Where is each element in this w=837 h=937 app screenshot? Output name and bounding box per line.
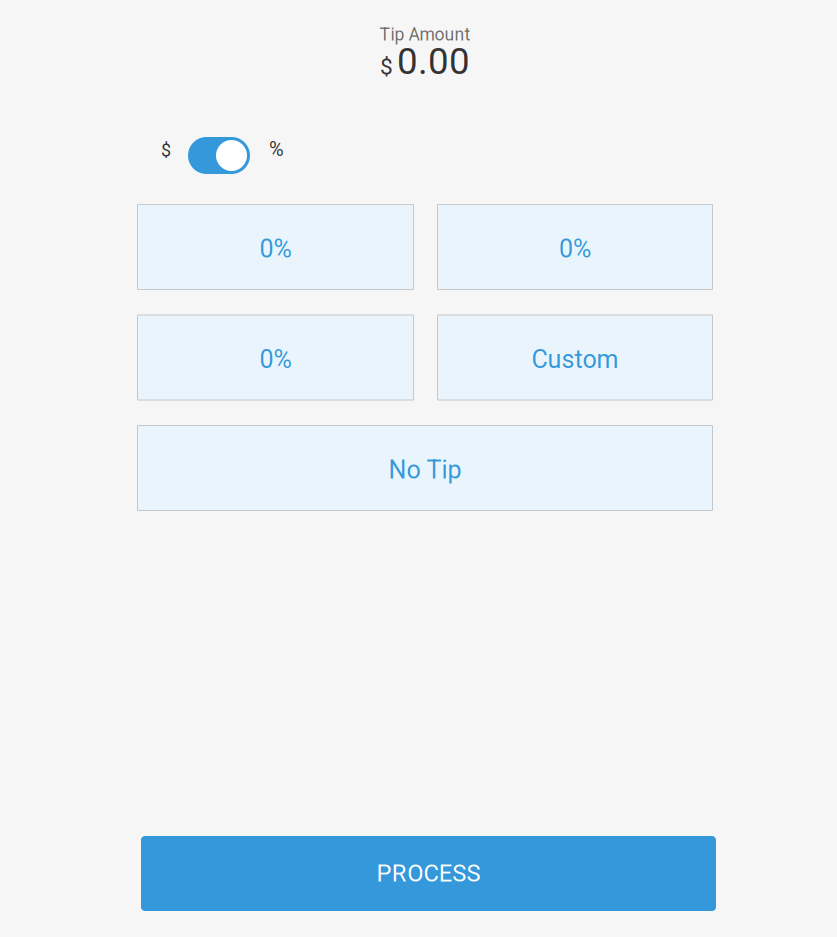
staticText: $ xyxy=(161,140,171,161)
staticText: No Tip xyxy=(388,455,461,485)
button[interactable]: PROCESS xyxy=(141,836,716,911)
button[interactable]: No Tip xyxy=(137,425,713,511)
button[interactable]: 0% xyxy=(437,204,713,290)
staticText: 0.00 xyxy=(397,40,470,83)
staticText: % xyxy=(269,138,284,161)
staticText: 0% xyxy=(559,234,591,264)
button[interactable]: Custom xyxy=(437,314,713,400)
staticText: 0% xyxy=(259,345,291,374)
staticText: Tip Amount xyxy=(379,24,470,45)
staticText: 0% xyxy=(259,234,291,264)
button[interactable]: 0% xyxy=(137,204,414,290)
button[interactable]: 0% xyxy=(137,314,414,400)
button[interactable]: Switch between amount and percent xyxy=(188,137,250,174)
staticText: PROCESS xyxy=(376,860,481,887)
staticText: $ xyxy=(380,53,393,80)
staticText: Custom xyxy=(531,345,618,374)
